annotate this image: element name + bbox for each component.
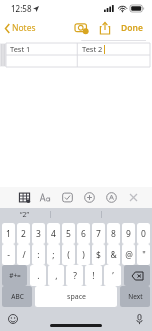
- button[interactable]: “2”: [0, 208, 50, 221]
- staticText: ): [82, 249, 85, 261]
- staticText: 2: [21, 228, 26, 240]
- button[interactable]: Delete: [124, 265, 150, 286]
- staticText: ?: [73, 270, 77, 282]
- button[interactable]: ": [137, 244, 150, 265]
- button[interactable]: Notes: [0, 19, 42, 37]
- staticText: ": [142, 249, 146, 261]
- button[interactable]: ABC: [2, 286, 32, 307]
- button[interactable]: $: [92, 244, 105, 265]
- button[interactable]: 0: [137, 223, 150, 244]
- staticText: -: [7, 249, 10, 261]
- staticText: 0: [141, 228, 146, 240]
- button[interactable]: Emoji: [5, 311, 21, 327]
- button[interactable]: Text format: [35, 187, 56, 208]
- staticText: “2”: [20, 210, 30, 220]
- button[interactable]: ?: [66, 265, 83, 286]
- button[interactable]: space: [35, 286, 117, 307]
- button[interactable]: #+=: [2, 265, 27, 286]
- staticText: :: [37, 249, 40, 261]
- button[interactable]: 9: [122, 223, 135, 244]
- button[interactable]: 2: [17, 223, 30, 244]
- staticText: /: [22, 249, 26, 261]
- button[interactable]: -: [2, 244, 15, 265]
- staticText: 1: [6, 228, 11, 240]
- button[interactable]: 6: [77, 223, 90, 244]
- button[interactable]: ;: [47, 244, 60, 265]
- staticText: !: [92, 270, 95, 282]
- button[interactable]: Done: [117, 19, 147, 37]
- staticText: 5: [66, 228, 71, 240]
- staticText: .: [37, 270, 40, 282]
- button[interactable]: :: [32, 244, 45, 265]
- staticText: 7: [96, 228, 101, 240]
- staticText: ,: [55, 270, 58, 282]
- button[interactable]: ’: [104, 265, 121, 286]
- staticText: (: [67, 249, 70, 261]
- button[interactable]: Camera: [71, 18, 92, 37]
- staticText: 6: [81, 228, 86, 240]
- staticText: #+=: [9, 271, 21, 280]
- button[interactable]: 7: [92, 223, 105, 244]
- button[interactable]: Markup: [100, 187, 122, 208]
- staticText: space: [67, 292, 86, 302]
- staticText: 9: [126, 228, 131, 240]
- staticText: $: [96, 249, 101, 261]
- staticText: Next: [128, 292, 143, 301]
- staticText: Test 1: [10, 44, 31, 54]
- button[interactable]: 5: [62, 223, 75, 244]
- button[interactable]: Test 2: [78, 43, 152, 55]
- button[interactable]: Close keyboard: [122, 187, 144, 208]
- button[interactable]: 8: [107, 223, 120, 244]
- staticText: Test 2: [82, 44, 103, 54]
- button[interactable]: 4: [47, 223, 60, 244]
- staticText: 3: [36, 228, 41, 240]
- button[interactable]: ): [77, 244, 90, 265]
- staticText: ’: [112, 270, 114, 282]
- button[interactable]: .: [30, 265, 46, 286]
- button[interactable]: 3: [32, 223, 45, 244]
- staticText: ;: [52, 249, 55, 261]
- staticText: 4: [51, 228, 56, 240]
- button[interactable]: &: [107, 244, 120, 265]
- button[interactable]: 1: [2, 223, 15, 244]
- button[interactable]: Checklist: [56, 187, 78, 208]
- button[interactable]: Add: [78, 187, 100, 208]
- button[interactable]: /: [17, 244, 30, 265]
- button[interactable]: (: [62, 244, 75, 265]
- button[interactable]: !: [85, 265, 102, 286]
- button[interactable]: Dictation: [133, 311, 146, 328]
- staticText: 12:58: [11, 3, 32, 14]
- button[interactable]: ,: [48, 265, 64, 286]
- staticText: Done: [121, 22, 143, 34]
- staticText: &: [110, 249, 117, 261]
- staticText: 8: [111, 228, 116, 240]
- button[interactable]: Share: [96, 20, 114, 36]
- button[interactable]: Table: [14, 187, 35, 208]
- button[interactable]: Test 1: [6, 43, 78, 55]
- staticText: @: [125, 249, 133, 261]
- button[interactable]: Next: [120, 286, 150, 307]
- staticText: ABC: [11, 292, 24, 301]
- staticText: Notes: [12, 22, 36, 34]
- button[interactable]: @: [122, 244, 135, 265]
